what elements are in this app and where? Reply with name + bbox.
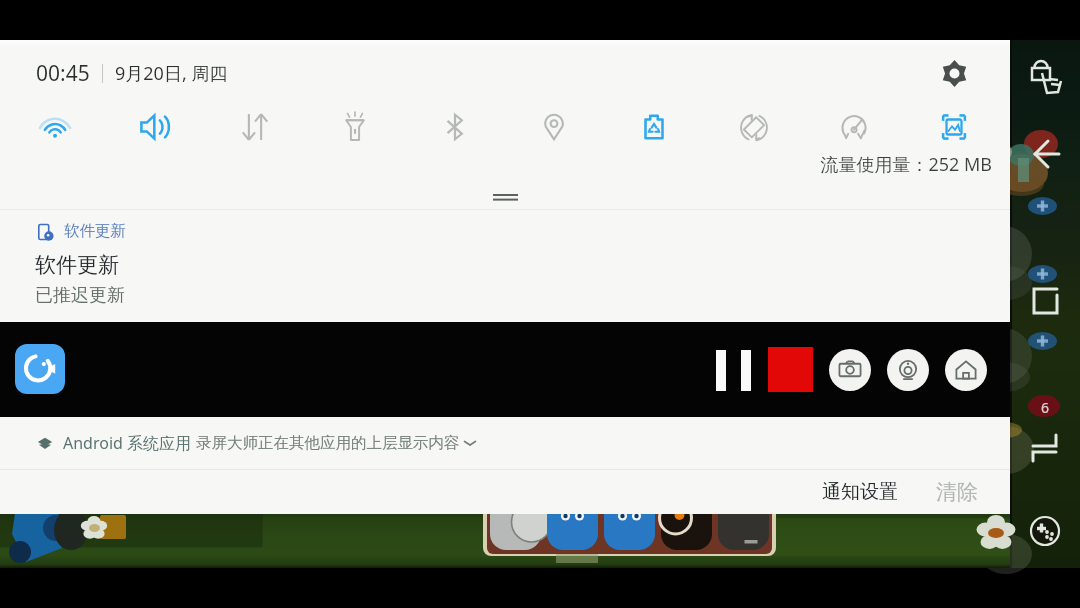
button[interactable]: Wi-Fi bbox=[29, 101, 81, 153]
button[interactable]: Battery saver bbox=[628, 101, 680, 153]
button[interactable]: Android 系统应用 bbox=[0, 417, 1010, 469]
button[interactable]: Speed bbox=[828, 101, 880, 153]
button[interactable]: Bluetooth bbox=[429, 101, 481, 153]
button[interactable]: Recents bbox=[1024, 278, 1068, 322]
button[interactable]: Volume bbox=[129, 101, 181, 153]
staticText: 00:45 bbox=[36, 59, 90, 88]
button[interactable]: 清除 bbox=[921, 470, 993, 514]
button[interactable]: Game controller bbox=[1028, 514, 1064, 550]
button[interactable]: Back bbox=[1024, 136, 1064, 176]
staticText: 流量使用量：252 MB bbox=[700, 152, 992, 177]
staticText: 已推迟更新 bbox=[35, 284, 125, 307]
staticText: 通知设置 bbox=[822, 480, 898, 504]
button[interactable]: Location bbox=[528, 101, 580, 153]
button[interactable]: Auto rotate bbox=[728, 101, 780, 153]
button[interactable]: 软件更新 bbox=[0, 210, 1010, 322]
button[interactable]: Camera overlay bbox=[887, 349, 929, 391]
button[interactable]: Pause bbox=[706, 342, 760, 398]
staticText: 录屏大师正在其他应用的上层显示内容 bbox=[196, 433, 460, 453]
button[interactable]: Swap bbox=[1024, 426, 1068, 470]
staticText: 6 bbox=[1041, 398, 1050, 417]
staticText: 软件更新 bbox=[35, 252, 119, 278]
button[interactable]: Home bbox=[945, 349, 987, 391]
button[interactable]: Screenshot bbox=[928, 101, 980, 153]
button[interactable]: Flashlight bbox=[329, 101, 381, 153]
button[interactable]: Screenshot bbox=[829, 349, 871, 391]
button[interactable]: Mobile data bbox=[229, 101, 281, 153]
button[interactable]: Screen recorder bbox=[15, 344, 65, 394]
staticText: Android 系统应用 bbox=[63, 432, 192, 454]
staticText: 清除 bbox=[936, 479, 978, 505]
button[interactable]: Touch lock bbox=[1022, 54, 1066, 98]
staticText: 软件更新 bbox=[64, 221, 126, 241]
button[interactable]: Settings bbox=[930, 49, 978, 97]
staticText: 9月20日, 周四 bbox=[115, 61, 228, 86]
button[interactable]: 通知设置 bbox=[807, 470, 913, 514]
